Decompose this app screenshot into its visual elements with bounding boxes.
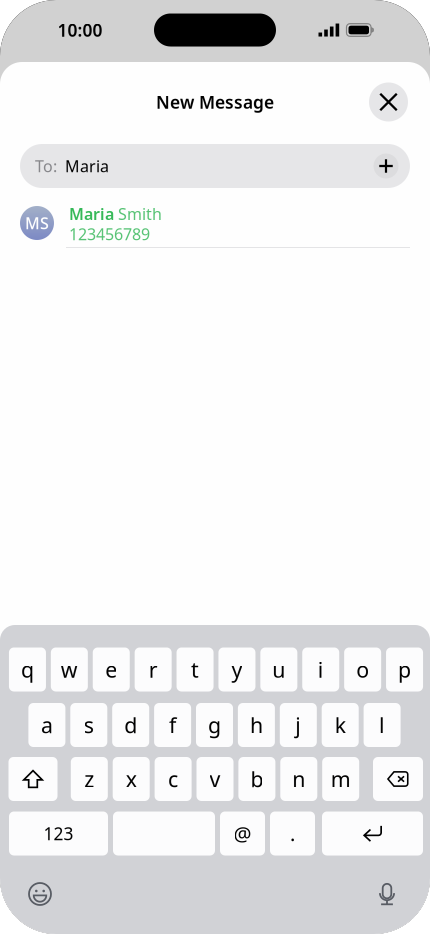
staticText: l — [379, 711, 385, 739]
button[interactable]: Shift — [8, 757, 57, 801]
staticText: a — [41, 711, 53, 739]
staticText: j — [295, 711, 301, 739]
button[interactable]: k — [322, 703, 359, 747]
staticText: e — [105, 655, 117, 684]
button[interactable]: c — [155, 757, 192, 801]
button[interactable]: n — [280, 757, 317, 801]
staticText: New Message — [156, 90, 274, 113]
staticText: u — [272, 655, 285, 684]
button[interactable]: 123 — [9, 811, 108, 855]
button[interactable]: . — [270, 811, 315, 855]
button[interactable]: o — [344, 647, 381, 691]
button[interactable]: y — [218, 647, 255, 691]
staticText: v — [209, 765, 220, 793]
staticText: To: — [35, 155, 57, 177]
button[interactable]: i — [302, 647, 339, 691]
button[interactable]: m — [322, 757, 359, 801]
button[interactable]: q — [9, 647, 46, 691]
button[interactable]: f — [154, 703, 191, 747]
staticText: q — [21, 655, 34, 684]
staticText: c — [168, 765, 178, 793]
button[interactable]: r — [135, 647, 172, 691]
staticText: 123 — [43, 822, 73, 845]
button[interactable]: Return — [322, 811, 423, 855]
staticText: Maria — [57, 155, 109, 177]
staticText: . — [290, 820, 295, 847]
staticText: d — [124, 711, 137, 739]
button[interactable]: d — [112, 703, 149, 747]
staticText: z — [84, 765, 94, 793]
staticText: 10:00 — [57, 18, 102, 41]
button[interactable]: h — [238, 703, 275, 747]
button[interactable]: z — [71, 757, 108, 801]
button[interactable]: Add contact — [373, 153, 398, 178]
button[interactable]: s — [70, 703, 107, 747]
button[interactable]: u — [260, 647, 297, 691]
staticText: Maria — [69, 203, 114, 224]
button[interactable]: Close — [369, 82, 408, 121]
button[interactable]: Dictation — [377, 882, 396, 905]
staticText: o — [356, 655, 369, 684]
staticText: 123456789 — [69, 223, 150, 245]
staticText: w — [61, 655, 78, 684]
staticText: p — [398, 655, 411, 684]
staticText: MS — [25, 212, 49, 234]
staticText: k — [335, 711, 346, 739]
staticText: g — [208, 711, 221, 739]
button[interactable]: Emoji keyboard — [29, 883, 51, 905]
button[interactable]: MS — [0, 200, 430, 248]
staticText: r — [149, 655, 158, 684]
button[interactable]: t — [176, 647, 213, 691]
staticText: i — [318, 655, 324, 684]
staticText: m — [331, 765, 351, 793]
button[interactable]: a — [28, 703, 65, 747]
staticText: @ — [233, 820, 251, 847]
button[interactable]: Delete — [373, 757, 423, 801]
button[interactable]: b — [238, 757, 275, 801]
staticText: Smith — [114, 203, 162, 224]
button[interactable]: v — [196, 757, 233, 801]
staticText: h — [250, 711, 263, 739]
staticText: y — [231, 655, 242, 684]
button[interactable]: j — [280, 703, 317, 747]
button[interactable]: e — [93, 647, 130, 691]
staticText: f — [169, 711, 176, 739]
button[interactable]: Space — [113, 811, 215, 855]
button[interactable]: p — [386, 647, 423, 691]
button[interactable]: x — [113, 757, 150, 801]
button[interactable]: @ — [220, 811, 265, 855]
staticText: s — [84, 711, 94, 739]
button[interactable]: w — [51, 647, 88, 691]
button[interactable]: l — [364, 703, 401, 747]
staticText: n — [292, 765, 305, 793]
staticText: t — [191, 655, 199, 684]
staticText: x — [126, 765, 137, 793]
staticText: b — [250, 765, 263, 793]
button[interactable]: g — [196, 703, 233, 747]
